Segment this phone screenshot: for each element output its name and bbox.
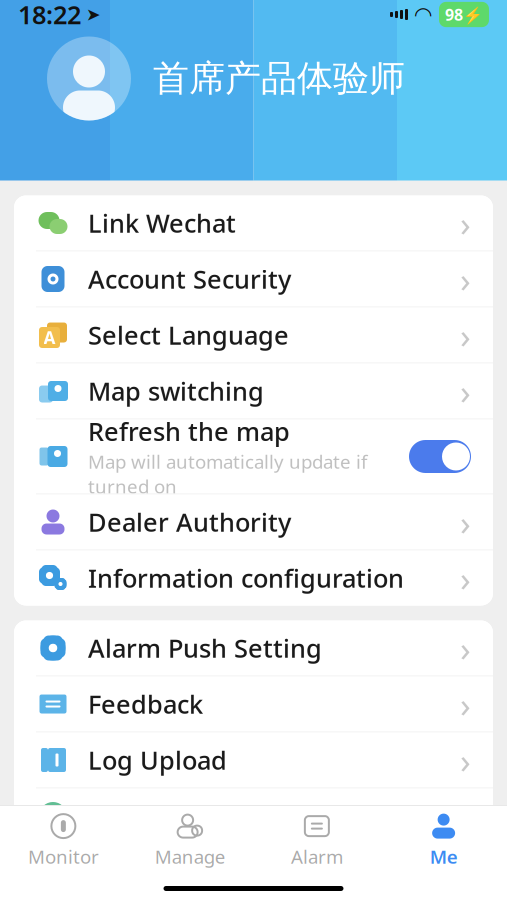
staticText: › [460, 200, 471, 246]
staticText: Map will automatically update if turned … [88, 449, 367, 499]
staticText: 首席产品体验师 [153, 56, 405, 101]
staticText: 98⚡ [445, 4, 483, 25]
staticText: Link Wechat [88, 206, 236, 240]
button[interactable]: Dealer Authority [14, 494, 493, 549]
staticText: Alarm [291, 844, 343, 869]
staticText: About [88, 855, 162, 889]
staticText: Me [430, 844, 458, 869]
staticText: Monitor [28, 844, 99, 869]
staticText: Log Upload [88, 743, 227, 777]
staticText: › [460, 368, 471, 414]
staticText: › [460, 312, 471, 358]
button[interactable]: Link Wechat [14, 195, 493, 250]
button[interactable]: A [14, 307, 493, 362]
staticText: › [460, 256, 471, 302]
staticText: ◠ [415, 2, 431, 27]
button[interactable]: Manage [127, 805, 254, 869]
button[interactable]: Refresh the map [14, 419, 493, 493]
staticText: › [460, 681, 471, 727]
staticText: Alarm Push Setting [88, 631, 322, 665]
staticText: Information configuration [88, 561, 404, 595]
staticText: A [43, 326, 55, 349]
button[interactable]: Information configuration [14, 550, 493, 605]
staticText: Manage [155, 844, 226, 869]
staticText: › [460, 737, 471, 783]
staticText: Refresh the map [88, 414, 290, 448]
button[interactable]: Account Security [14, 251, 493, 306]
button[interactable]: Feedback [14, 676, 493, 731]
staticText: 18:22 [18, 0, 81, 31]
staticText: Dealer Authority [88, 505, 291, 539]
staticText: Select Language [88, 318, 289, 352]
button[interactable]: Network test [14, 788, 493, 843]
staticText: › [460, 499, 471, 545]
button[interactable]: Alarm [253, 805, 380, 869]
button[interactable]: About [14, 844, 493, 899]
staticText: Feedback [88, 687, 203, 721]
staticText: ➤ [86, 5, 101, 24]
button[interactable]: Log Upload [14, 732, 493, 787]
staticText: Map switching [88, 374, 264, 408]
button[interactable]: Alarm Push Setting [14, 620, 493, 675]
staticText: › [460, 555, 471, 601]
staticText: Account Security [88, 262, 291, 296]
button[interactable]: Map switching [14, 363, 493, 418]
staticText: › [460, 793, 471, 839]
button[interactable]: Monitor [0, 805, 127, 869]
button[interactable]: Me [380, 805, 507, 869]
staticText: › [460, 625, 471, 671]
staticText: Network test [88, 799, 247, 833]
